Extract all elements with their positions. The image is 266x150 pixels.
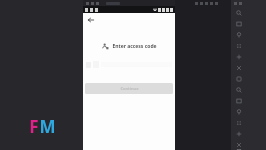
staticText: Enter access code	[112, 43, 157, 50]
button[interactable]: Tool 7	[234, 85, 243, 94]
staticText: M	[39, 115, 56, 138]
button[interactable]: Tool 4	[234, 52, 243, 61]
button[interactable]: Tool 12	[234, 140, 243, 149]
button[interactable]: Tool 11	[234, 129, 243, 138]
button[interactable]: Continue	[85, 83, 173, 94]
button[interactable]: Tool 8	[234, 96, 243, 105]
button[interactable]: Tool 6	[234, 74, 243, 83]
button[interactable]: Tool 5	[234, 63, 243, 72]
button[interactable]: Back	[86, 15, 95, 24]
button[interactable]: Tool 10	[234, 118, 243, 127]
button[interactable]: Tool 3	[234, 41, 243, 50]
button[interactable]: Tool 2	[234, 30, 243, 39]
staticText: Continue	[120, 86, 139, 91]
button[interactable]: Tool 1	[234, 19, 243, 28]
button[interactable]: Tool 0	[234, 8, 243, 17]
staticText: F	[29, 115, 39, 138]
button[interactable]: Tool 9	[234, 107, 243, 116]
